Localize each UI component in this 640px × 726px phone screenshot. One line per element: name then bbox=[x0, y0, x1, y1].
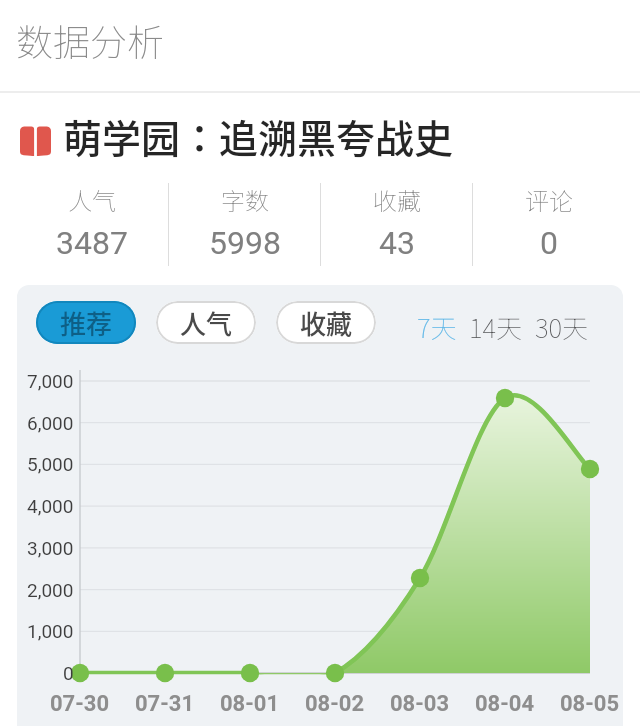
staticText: 08-04 bbox=[475, 691, 535, 717]
button[interactable]: 7天 bbox=[417, 308, 457, 346]
staticText: 人气 bbox=[68, 182, 116, 217]
staticText: 7,000 bbox=[27, 370, 74, 392]
staticText: 07-30 bbox=[50, 691, 110, 717]
staticText: 08-01 bbox=[220, 691, 280, 717]
staticText: 08-03 bbox=[390, 691, 450, 717]
staticText: 0 bbox=[540, 224, 558, 262]
staticText: 43 bbox=[379, 224, 415, 262]
staticText: 07-31 bbox=[135, 691, 195, 717]
staticText: 评论 bbox=[525, 182, 573, 217]
staticText: 人气 bbox=[180, 304, 233, 342]
button[interactable]: 人气 bbox=[156, 301, 256, 344]
staticText: 0 bbox=[63, 662, 74, 684]
staticText: 08-05 bbox=[560, 691, 620, 717]
staticText: 收藏 bbox=[300, 304, 353, 342]
button[interactable]: 30天 bbox=[535, 308, 589, 346]
staticText: 推荐 bbox=[60, 304, 113, 342]
staticText: 6,000 bbox=[27, 412, 74, 434]
button[interactable]: 萌学园：追溯黑夸战史 bbox=[20, 104, 460, 164]
button[interactable]: 推荐 bbox=[36, 301, 136, 344]
button[interactable]: 14天 bbox=[469, 308, 523, 346]
staticText: 萌学园：追溯黑夸战史 bbox=[63, 108, 454, 164]
staticText: 1,000 bbox=[27, 620, 74, 642]
staticText: 字数 bbox=[221, 182, 269, 217]
button[interactable]: 收藏 bbox=[276, 301, 376, 344]
staticText: 5,000 bbox=[27, 453, 74, 475]
staticText: 3,000 bbox=[27, 537, 74, 559]
staticText: 5998 bbox=[209, 224, 281, 262]
staticText: 3487 bbox=[56, 224, 128, 262]
staticText: 数据分析 bbox=[16, 13, 164, 67]
staticText: 2,000 bbox=[27, 579, 74, 601]
staticText: 收藏 bbox=[373, 182, 421, 217]
staticText: 4,000 bbox=[27, 495, 74, 517]
staticText: 08-02 bbox=[305, 691, 365, 717]
